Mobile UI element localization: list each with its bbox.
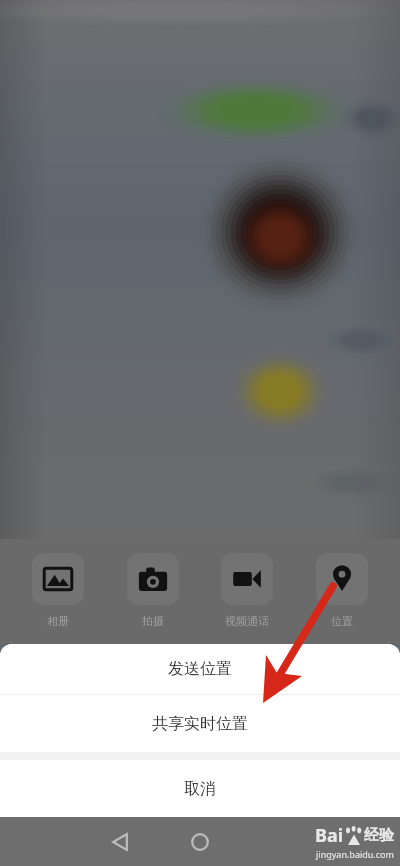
button[interactable]: 取消: [0, 760, 400, 817]
staticText: 发送位置: [168, 659, 232, 679]
button[interactable]: Location: [306, 553, 378, 628]
staticText: jingyan.baidu.com: [316, 848, 394, 860]
button[interactable]: Photos: [22, 553, 94, 628]
button[interactable]: Camera: [117, 553, 189, 628]
staticText: 共享实时位置: [152, 714, 248, 734]
staticText: 经验: [364, 826, 394, 845]
button[interactable]: Home: [160, 817, 240, 866]
staticText: 相册: [47, 614, 69, 628]
staticText: 拍摄: [142, 614, 164, 628]
button[interactable]: 发送位置: [0, 644, 400, 694]
staticText: 位置: [331, 614, 353, 628]
button[interactable]: Back: [80, 817, 160, 866]
button[interactable]: Video call: [211, 553, 283, 628]
staticText: Bai: [315, 823, 344, 848]
staticText: 取消: [184, 779, 216, 799]
button[interactable]: 共享实时位置: [0, 695, 400, 752]
staticText: 视频通话: [225, 614, 269, 628]
